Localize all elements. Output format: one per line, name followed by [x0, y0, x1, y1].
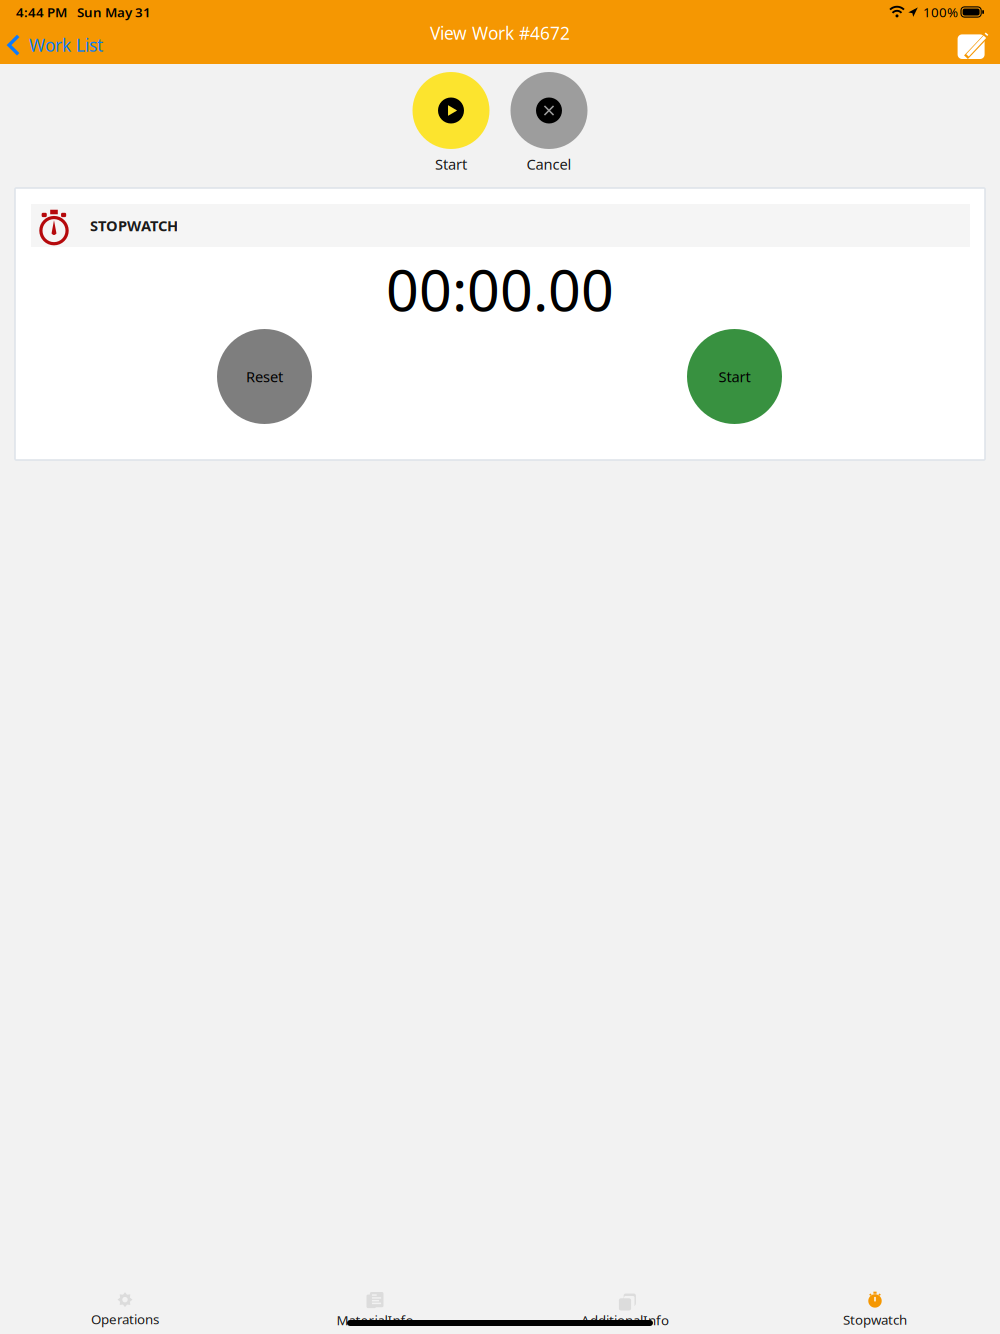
button[interactable]: Cancel — [500, 72, 598, 178]
staticText: Start — [435, 154, 467, 174]
button[interactable]: MaterialInfo — [250, 1284, 500, 1334]
staticText: Operations — [91, 1310, 159, 1328]
staticText: Sun May 31 — [77, 3, 151, 21]
staticText: 100% — [923, 3, 958, 21]
staticText: Cancel — [526, 154, 571, 174]
staticText: Work List — [29, 33, 103, 56]
button[interactable]: Reset — [217, 329, 312, 424]
button[interactable]: AdditionalInfo — [500, 1284, 750, 1334]
staticText: View Work #4672 — [430, 21, 570, 44]
staticText: 00:00.00 — [386, 251, 614, 327]
staticText: MaterialInfo — [336, 1311, 413, 1329]
staticText: 4:44 PM — [16, 3, 67, 21]
staticText: AdditionalInfo — [581, 1311, 669, 1329]
staticText: Stopwatch — [843, 1311, 907, 1328]
button[interactable]: Start — [402, 72, 500, 178]
button[interactable]: Stopwatch — [750, 1284, 1000, 1334]
staticText: Start — [718, 367, 750, 386]
staticText: STOPWATCH — [90, 216, 178, 235]
button[interactable]: Operations — [0, 1284, 250, 1334]
button[interactable]: Start — [687, 329, 782, 424]
button[interactable]: Edit — [952, 26, 992, 62]
staticText: Reset — [246, 367, 283, 386]
button[interactable]: Work List — [0, 28, 110, 62]
